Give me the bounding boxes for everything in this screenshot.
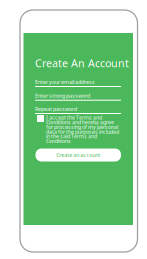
- staticText: I accept the Terms and Conditions and he…: [46, 114, 119, 144]
- staticText: Create An Account: [35, 56, 129, 70]
- staticText: Repeat password: [35, 105, 77, 113]
- staticText: Create an account: [56, 151, 100, 159]
- button[interactable]: Create an account: [35, 148, 121, 161]
- staticText: Enter strong password: [35, 92, 90, 99]
- button[interactable]: I accept the Terms and Conditions and he…: [37, 114, 123, 144]
- staticText: Enter your email address: [35, 78, 95, 86]
